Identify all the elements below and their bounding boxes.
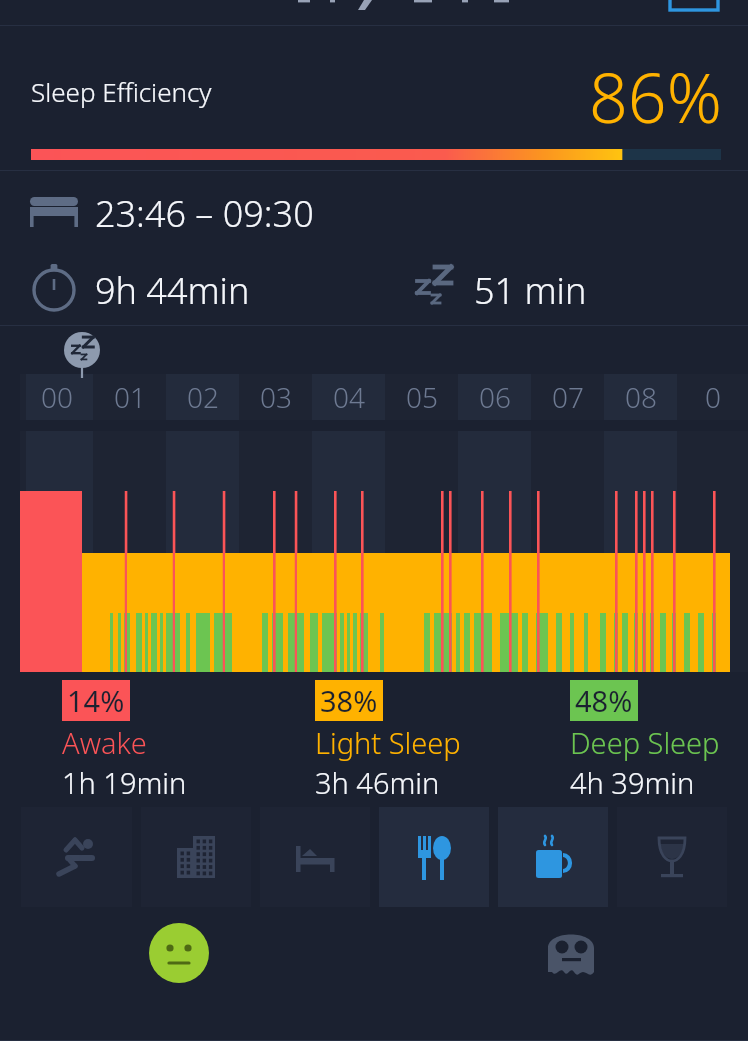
staticText: 48%: [575, 681, 633, 720]
button[interactable]: Nap: [260, 807, 370, 907]
staticText: Sleep Efficiency: [31, 74, 212, 109]
button[interactable]: Sleep Efficiency: [0, 26, 748, 171]
staticText: 0: [705, 378, 721, 416]
button[interactable]: 00: [0, 326, 748, 674]
staticText: 05: [406, 378, 438, 416]
staticText: 08: [625, 378, 657, 416]
staticText: 01: [114, 378, 146, 416]
staticText: 06: [479, 378, 511, 416]
staticText: 4h 39min: [570, 763, 695, 802]
button[interactable]: Mood: neutral: [149, 923, 209, 983]
staticText: 04: [333, 378, 365, 416]
button[interactable]: 38%: [315, 680, 461, 802]
staticText: 23:46 – 09:30: [95, 189, 314, 238]
staticText: 03: [260, 378, 292, 416]
button[interactable]: 14%: [62, 680, 187, 802]
button[interactable]: Dreams: [540, 922, 602, 984]
staticText: 3h 46min: [315, 763, 440, 802]
staticText: 00: [41, 378, 73, 416]
staticText: 1h 19min: [62, 763, 187, 802]
staticText: 38%: [320, 681, 378, 720]
staticText: 86%: [589, 50, 722, 143]
button[interactable]: 23:46 – 09:30: [0, 171, 748, 326]
staticText: 51 min: [474, 266, 587, 315]
button[interactable]: Snoring: [64, 332, 100, 368]
button[interactable]: 48%: [570, 680, 720, 802]
button[interactable]: Work: [141, 807, 251, 907]
staticText: 02: [187, 378, 219, 416]
button[interactable]: Exercise: [21, 807, 132, 907]
button[interactable]: Late meal: [379, 807, 489, 907]
staticText: 14%: [67, 681, 125, 720]
staticText: Awake: [62, 723, 147, 762]
staticText: Deep Sleep: [570, 723, 720, 762]
staticText: 07: [552, 378, 584, 416]
staticText: Light Sleep: [315, 723, 461, 762]
staticText: 9h 44min: [95, 266, 250, 315]
button[interactable]: Alcohol: [617, 807, 727, 907]
button[interactable]: Caffeine: [498, 807, 608, 907]
